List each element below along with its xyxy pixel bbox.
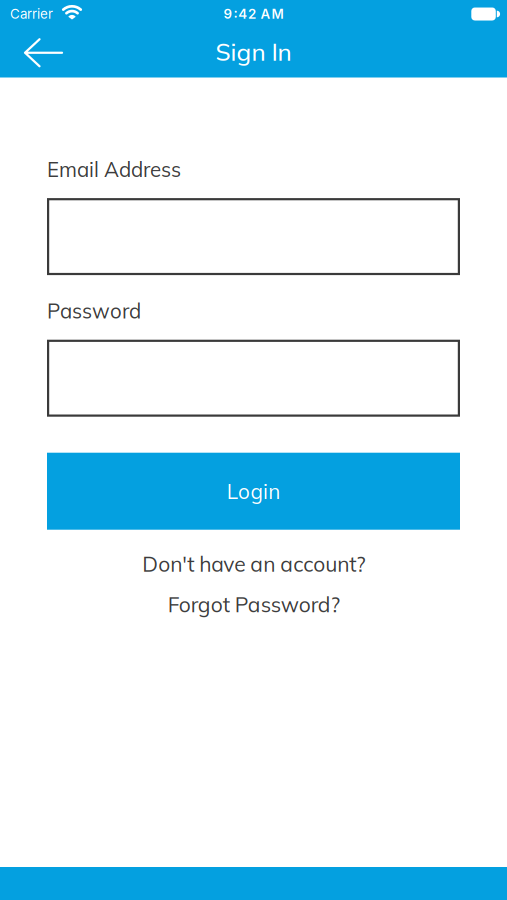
- staticText: 9:42 AM: [224, 6, 283, 22]
- textField[interactable]: [57, 221, 460, 252]
- staticText: Forgot Password?: [168, 591, 340, 617]
- button[interactable]: Login: [47, 453, 460, 530]
- staticText: Login: [227, 478, 280, 504]
- staticText: Password: [47, 298, 141, 324]
- staticText: Sign In: [215, 37, 291, 67]
- staticText: Email Address: [47, 156, 181, 182]
- button[interactable]: Don't have an account?: [142, 551, 365, 577]
- staticText: Carrier: [10, 6, 53, 22]
- button[interactable]: Forgot Password?: [168, 591, 340, 617]
- staticText: Don't have an account?: [142, 551, 365, 577]
- textField[interactable]: [57, 363, 460, 393]
- button[interactable]: [0, 28, 70, 77]
